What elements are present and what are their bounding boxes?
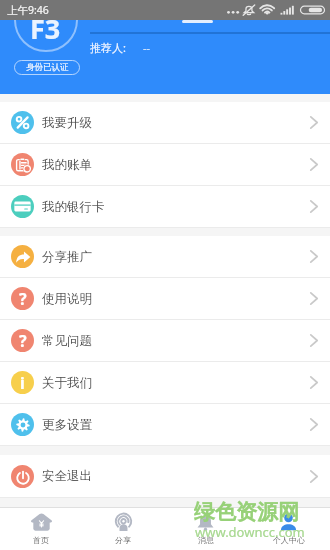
staticText: ? — [19, 288, 27, 310]
button[interactable]: 个人中心 — [247, 508, 330, 550]
staticText: 关于我们 — [42, 375, 92, 391]
staticText: 分享推广 — [42, 249, 92, 265]
button[interactable]: 分享推广 — [0, 236, 330, 277]
staticText: 身份已认证 — [26, 62, 69, 73]
staticText: 推荐人: — [90, 40, 126, 55]
staticText: 我要升级 — [42, 115, 92, 131]
staticText: 分享 — [115, 535, 131, 545]
staticText: 我的银行卡 — [42, 199, 105, 215]
staticText: 上午9:46 — [7, 3, 49, 17]
button[interactable]: 安全退出 — [0, 455, 330, 497]
button[interactable]: 我的账单 — [0, 144, 330, 185]
staticText: -- — [143, 40, 151, 55]
staticText: 安全退出 — [42, 468, 92, 484]
button[interactable]: 更多设置 — [0, 404, 330, 445]
button[interactable]: 身份已认证 — [14, 60, 80, 75]
button[interactable]: 我要升级 — [0, 102, 330, 143]
staticText: i — [20, 372, 25, 394]
button[interactable]: i — [0, 362, 330, 403]
staticText: 更多设置 — [42, 417, 92, 433]
staticText: 消息 — [198, 535, 214, 545]
staticText: 我的账单 — [42, 157, 92, 173]
staticText: 使用说明 — [42, 291, 92, 307]
button[interactable]: 消息 — [164, 508, 247, 550]
button[interactable]: ? — [0, 320, 330, 361]
button[interactable]: ? — [0, 278, 330, 319]
staticText: ? — [19, 330, 27, 352]
staticText: 常见问题 — [42, 333, 92, 349]
button[interactable]: 我的银行卡 — [0, 186, 330, 227]
button[interactable]: 分享 — [82, 508, 164, 550]
staticText: 个人中心 — [273, 535, 305, 545]
staticText: 绿色资源网 — [194, 499, 299, 525]
staticText: www.downcc.com — [195, 523, 305, 541]
button[interactable]: 首页 — [0, 508, 82, 550]
staticText: F3 — [30, 20, 61, 47]
staticText: 首页 — [33, 535, 49, 545]
